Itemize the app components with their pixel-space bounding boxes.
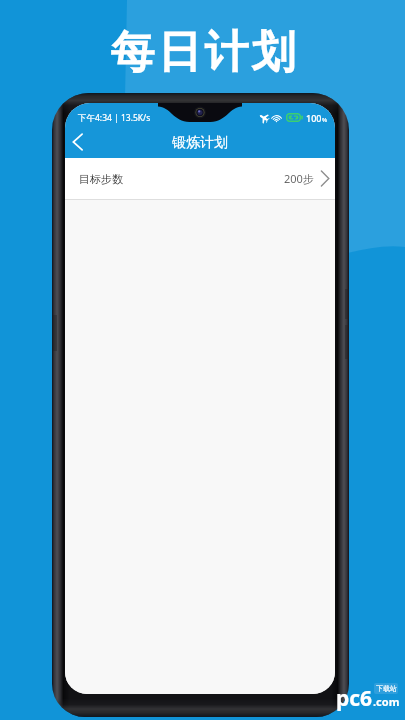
staticText: .com: [373, 694, 400, 709]
staticText: pc6: [336, 684, 373, 713]
staticText: 每日计划: [109, 25, 297, 80]
staticText: 100: [306, 112, 322, 124]
button[interactable]: Back: [65, 126, 89, 158]
staticText: 锻炼计划: [172, 134, 228, 152]
staticText: 目标步数: [79, 172, 123, 186]
staticText: 下载站: [376, 684, 397, 693]
staticText: 200步: [284, 171, 314, 186]
staticText: %: [322, 116, 328, 124]
button[interactable]: 目标步数: [65, 158, 335, 199]
staticText: 下午4:34 | 13.5K/s: [78, 112, 151, 124]
